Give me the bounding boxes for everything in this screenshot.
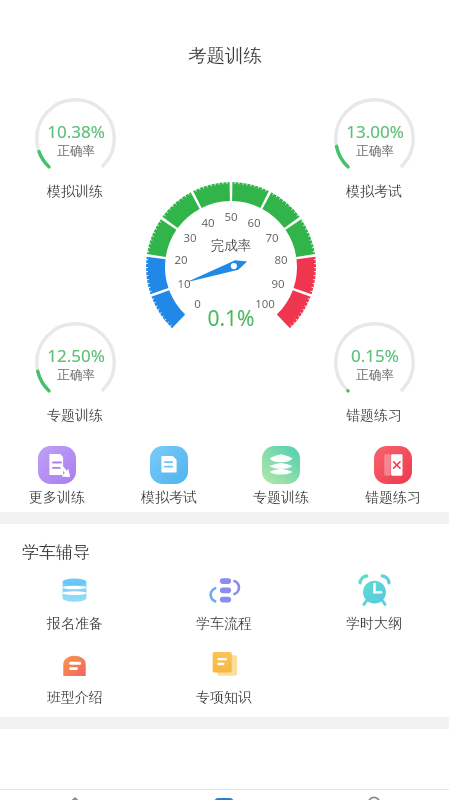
- staticText: 13.00%: [346, 120, 404, 143]
- staticText: 60: [247, 215, 261, 231]
- staticText: 正确率: [57, 143, 95, 159]
- staticText: 10.38%: [47, 120, 105, 143]
- staticText: 100: [255, 296, 275, 312]
- button[interactable]: 专题训练: [225, 446, 337, 507]
- button[interactable]: 首页: [0, 790, 149, 800]
- staticText: 70: [265, 230, 279, 246]
- button[interactable]: 专项知识: [149, 648, 299, 707]
- staticText: 20: [174, 252, 188, 268]
- button[interactable]: 学车流程: [149, 574, 299, 633]
- staticText: 学车流程: [196, 615, 252, 633]
- staticText: 考题训练: [188, 44, 262, 67]
- button[interactable]: 12.50%: [35, 322, 116, 403]
- button[interactable]: 更多训练: [0, 446, 113, 507]
- staticText: 10: [177, 276, 191, 292]
- staticText: 模拟考试: [141, 489, 197, 507]
- staticText: 正确率: [356, 143, 394, 159]
- staticText: 正确率: [356, 367, 394, 383]
- button[interactable]: 0.15%: [334, 322, 415, 403]
- button[interactable]: 我的: [299, 790, 449, 800]
- button[interactable]: 13.00%: [334, 98, 415, 179]
- staticText: 80: [274, 252, 288, 268]
- staticText: 学车辅导: [22, 542, 90, 563]
- staticText: 错题练习: [334, 407, 414, 425]
- button[interactable]: 错题练习: [337, 446, 449, 507]
- button[interactable]: 报名准备: [0, 574, 149, 633]
- staticText: 模拟考试: [334, 183, 414, 201]
- staticText: 完成率: [204, 237, 258, 254]
- staticText: 模拟训练: [35, 183, 115, 201]
- staticText: 学时大纲: [346, 615, 402, 633]
- staticText: 12.50%: [47, 344, 105, 367]
- staticText: 0.15%: [351, 344, 399, 367]
- staticText: 90: [271, 276, 285, 292]
- staticText: 错题练习: [365, 489, 421, 507]
- staticText: 正确率: [57, 367, 95, 383]
- staticText: 专项知识: [196, 689, 252, 707]
- button[interactable]: 学时大纲: [299, 574, 449, 633]
- staticText: 报名准备: [47, 615, 103, 633]
- staticText: 30: [183, 230, 197, 246]
- staticText: 专题训练: [253, 489, 309, 507]
- staticText: 更多训练: [29, 489, 85, 507]
- staticText: 专题训练: [35, 407, 115, 425]
- staticText: 班型介绍: [47, 689, 103, 707]
- staticText: 50: [224, 209, 238, 225]
- button[interactable]: 10.38%: [35, 98, 116, 179]
- staticText: 0.1%: [181, 304, 281, 333]
- button[interactable]: 模拟考试: [113, 446, 225, 507]
- staticText: 40: [201, 215, 215, 231]
- button[interactable]: 学习: [149, 790, 299, 800]
- staticText: 0: [194, 296, 201, 312]
- button[interactable]: 班型介绍: [0, 648, 149, 707]
